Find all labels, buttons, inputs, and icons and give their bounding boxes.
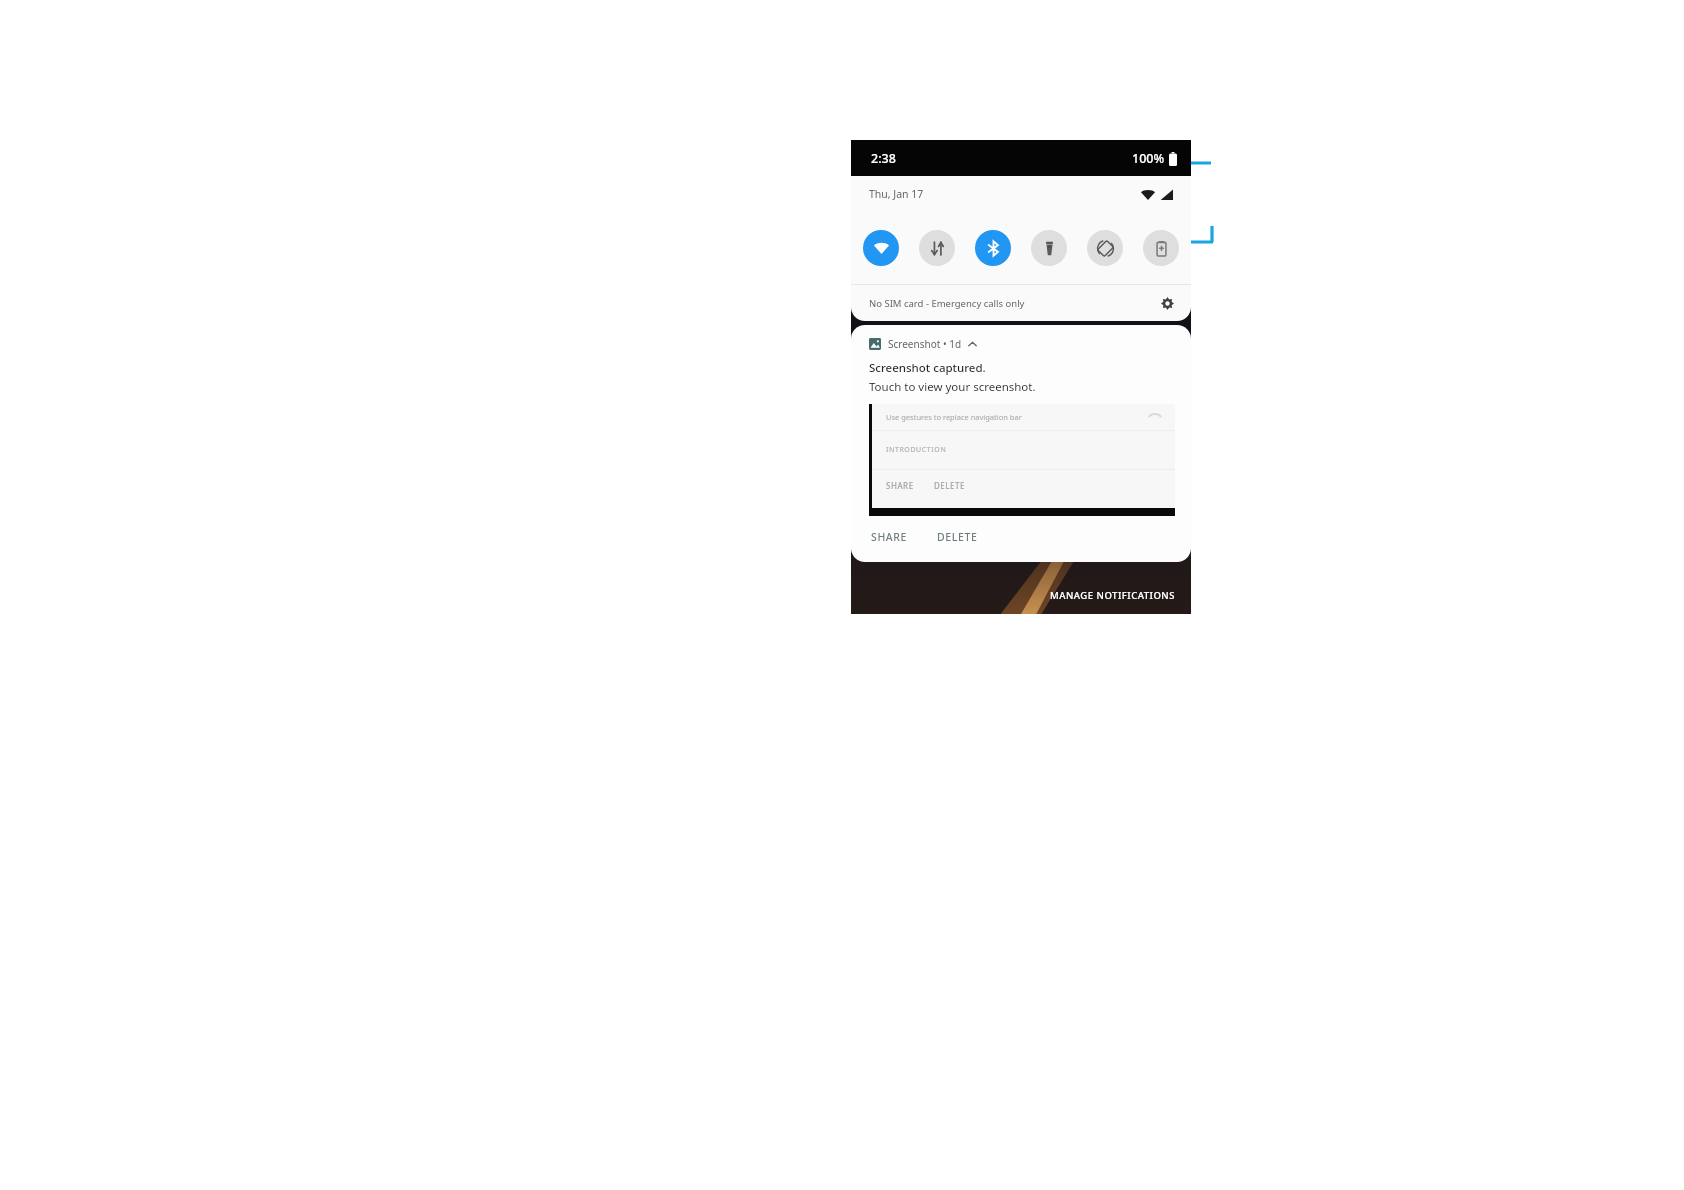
staticText: No SIM card - Emergency calls only [869, 297, 1025, 310]
button[interactable]: DELETE [934, 480, 965, 491]
button[interactable]: MANAGE NOTIFICATIONS [1042, 581, 1191, 610]
button[interactable]: Settings [1157, 293, 1177, 313]
staticText: 100% [1132, 150, 1165, 167]
staticText: INTRODUCTION [886, 445, 947, 455]
staticText: Use gestures to replace navigation bar [886, 412, 1022, 422]
staticText: Screenshot captured. [869, 360, 986, 376]
button[interactable]: SHARE [886, 480, 914, 491]
button[interactable]: Toggle on [975, 230, 1011, 266]
button[interactable]: Toggle off [1143, 230, 1179, 266]
button[interactable]: Toggle off [1031, 230, 1067, 266]
button[interactable]: SHARE [869, 524, 909, 550]
button[interactable]: Toggle off [1087, 230, 1123, 266]
staticText: Thu, Jan 17 [869, 187, 924, 201]
staticText: Touch to view your screenshot. [869, 379, 1036, 395]
staticText: SHARE [871, 530, 907, 544]
staticText: DELETE [937, 530, 978, 544]
button[interactable]: Toggle on [863, 230, 899, 266]
staticText: Screenshot • 1d [888, 337, 962, 351]
staticText: 2:38 [871, 150, 896, 167]
button[interactable]: Screenshot • 1d [851, 325, 1191, 562]
staticText: MANAGE NOTIFICATIONS [1050, 589, 1175, 602]
button[interactable]: Toggle off [919, 230, 955, 266]
button[interactable]: DELETE [935, 524, 980, 550]
